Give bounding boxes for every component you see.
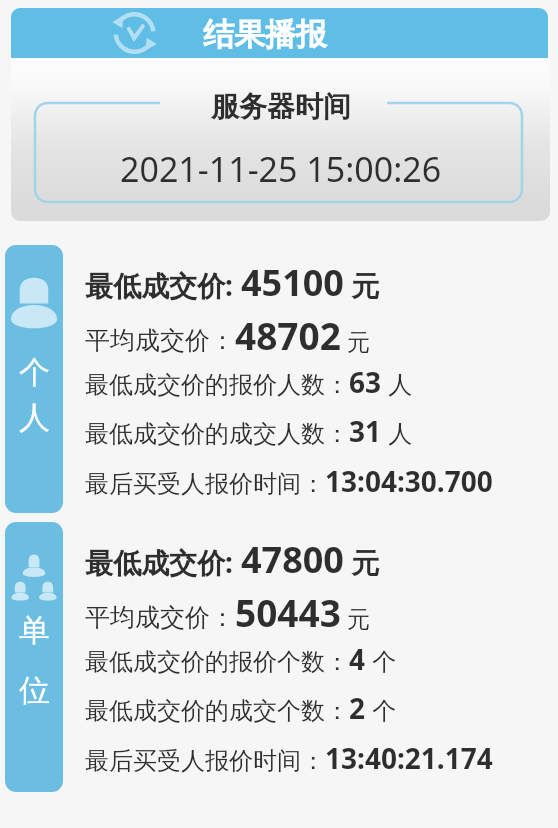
staticText: 单 — [19, 611, 50, 650]
staticText: 元 — [344, 543, 380, 581]
button[interactable]: 单位 — [5, 522, 63, 792]
staticText: 最低成交价: — [85, 266, 241, 304]
staticText: 13:40:21.174 — [325, 739, 493, 777]
staticText: 人 — [19, 398, 50, 437]
staticText: 个 — [366, 644, 397, 677]
staticText: 元 — [341, 325, 370, 356]
staticText: 平均成交价： — [85, 602, 235, 633]
staticText: 服务器时间 — [211, 89, 351, 124]
staticText: 31 — [349, 412, 382, 450]
staticText: 最低成交价的报价人数： — [85, 370, 349, 400]
staticText: 45100 — [241, 258, 344, 307]
staticText: 47800 — [241, 535, 344, 584]
staticText: 50443 — [235, 587, 341, 637]
staticText: 元 — [341, 602, 370, 633]
staticText: 最后买受人报价时间： — [85, 746, 325, 776]
staticText: 平均成交价： — [85, 325, 235, 356]
staticText: 最低成交价的成交人数： — [85, 419, 349, 449]
staticText: 13:04:30.700 — [325, 462, 493, 500]
other: Refresh — [111, 11, 158, 55]
staticText: 人 — [382, 416, 413, 449]
staticText: 个 — [366, 693, 397, 726]
staticText: 最低成交价: — [85, 543, 241, 581]
staticText: 48702 — [235, 310, 341, 360]
staticText: 人 — [382, 367, 413, 400]
staticText: 位 — [19, 671, 50, 710]
staticText: 4 — [349, 640, 366, 678]
staticText: 63 — [349, 363, 382, 401]
button[interactable]: Refresh — [11, 8, 548, 58]
button[interactable]: 个人 — [5, 245, 63, 513]
staticText: 最后买受人报价时间： — [85, 469, 325, 499]
staticText: 元 — [344, 266, 380, 304]
staticText: 最低成交价的报价个数： — [85, 647, 349, 677]
staticText: 2 — [349, 689, 366, 727]
staticText: 结果播报 — [203, 15, 327, 54]
staticText: 2021-11-25 15:00:26 — [120, 146, 442, 192]
staticText: 最低成交价的成交个数： — [85, 696, 349, 726]
staticText: 个 — [19, 353, 50, 392]
